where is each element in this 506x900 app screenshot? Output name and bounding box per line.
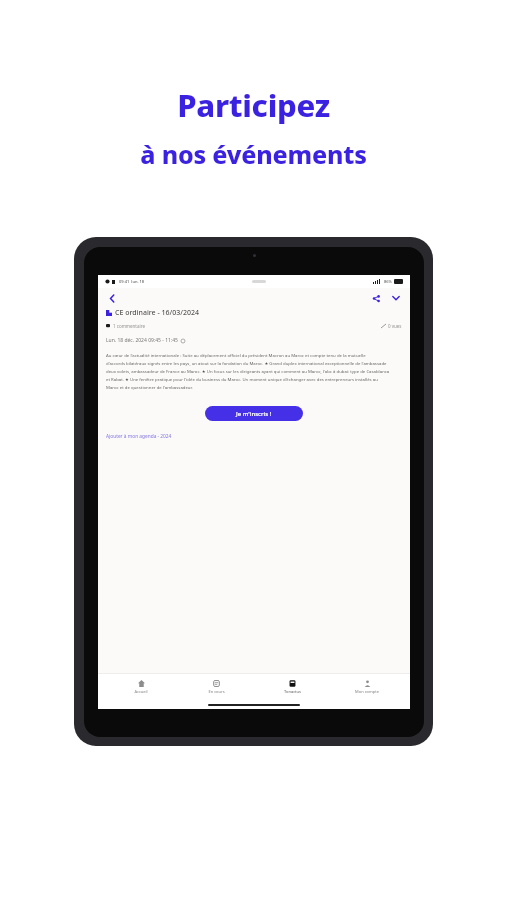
staticText: 09:41 lun. 18 xyxy=(119,279,145,284)
button[interactable]: Accueil xyxy=(108,678,174,696)
button[interactable]: Tonactus xyxy=(259,678,325,696)
staticText: et Rabat. ★ Une fenêtre pratique pour l'… xyxy=(106,376,378,382)
staticText: Participez xyxy=(177,84,330,126)
staticText: deux volets, ambassadeur de France au Ma… xyxy=(106,368,390,374)
staticText: Ajouter à mon agenda - 2024 xyxy=(106,433,172,440)
button[interactable]: Mon compte xyxy=(334,678,400,696)
staticText: d'accords bilatéraux signés entre les pa… xyxy=(106,360,387,366)
button[interactable]: Ajouter à mon agenda - 2024 xyxy=(106,433,172,440)
staticText: 86% xyxy=(384,279,392,284)
button[interactable]: En cours xyxy=(183,678,249,696)
staticText: Mon compte xyxy=(355,689,379,694)
button[interactable]: Plus d'options xyxy=(389,291,403,305)
button[interactable]: Retour xyxy=(105,291,119,305)
staticText: Lun. 18 déc. 2024 09:45 - 11:45 xyxy=(106,337,178,344)
staticText: 0 vues xyxy=(388,323,402,329)
button[interactable]: Je m'inscris ! xyxy=(205,406,303,421)
staticText: CE ordinaire - 16/03/2024 xyxy=(115,308,199,318)
staticText: 1 commentaire xyxy=(113,323,145,329)
button[interactable]: Partager xyxy=(369,291,383,305)
staticText: à nos événements xyxy=(140,137,367,171)
staticText: Je m'inscris ! xyxy=(236,410,272,418)
staticText: Au cœur de l'actualité internationale : … xyxy=(106,352,366,358)
staticText: En cours xyxy=(208,689,225,694)
staticText: Accueil xyxy=(134,689,148,694)
staticText: Maroc et de questionner de l'ambassadeur… xyxy=(106,384,193,390)
staticText: Tonactus xyxy=(284,689,301,694)
